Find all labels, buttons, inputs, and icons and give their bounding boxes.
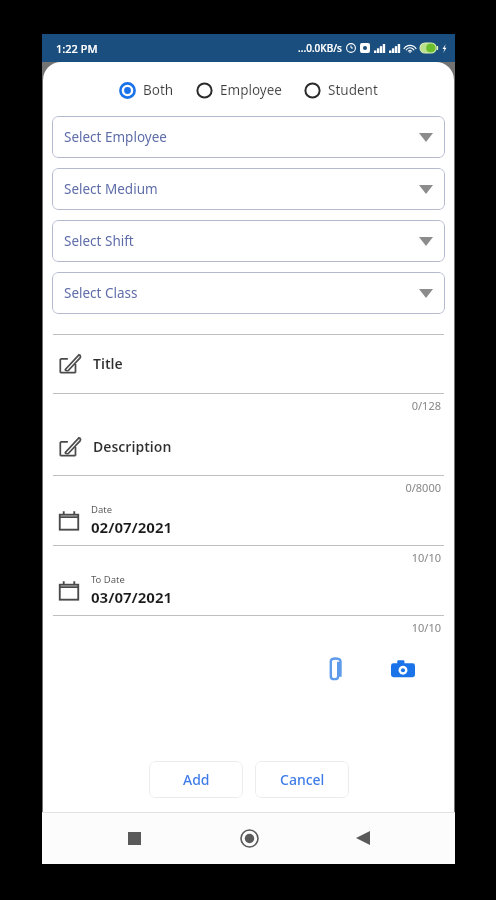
button[interactable]: Back (341, 816, 385, 860)
button[interactable]: Date (52, 495, 445, 565)
button[interactable]: Student (302, 78, 380, 102)
staticText: 02/07/2021 (91, 517, 173, 537)
staticText: 03/07/2021 (91, 587, 173, 607)
staticText: Employee (220, 81, 282, 99)
staticText: To Date (91, 573, 125, 586)
button[interactable]: To Date (52, 565, 445, 635)
button[interactable]: Both (117, 78, 176, 102)
staticText: Add (183, 770, 210, 789)
button[interactable]: Take photo (377, 643, 429, 695)
button[interactable]: Description (52, 413, 445, 495)
staticText: Student (328, 81, 378, 99)
button[interactable]: Recent apps (112, 816, 156, 860)
button[interactable]: Title (52, 335, 445, 413)
staticText: 0/8000 (52, 480, 441, 495)
staticText: Date (91, 503, 113, 516)
staticText: Select Shift (64, 232, 134, 250)
button[interactable]: Select Shift (52, 220, 445, 262)
staticText: 10/10 (52, 550, 441, 565)
button[interactable]: Employee (194, 78, 284, 102)
staticText: Description (93, 437, 172, 456)
staticText: Select Medium (64, 180, 158, 198)
staticText: ...0.0KB/s (298, 41, 342, 55)
staticText: 1:22 PM (56, 41, 98, 56)
staticText: Title (93, 354, 123, 373)
staticText: 0/128 (52, 398, 441, 413)
button[interactable]: Home (227, 816, 271, 860)
staticText: Cancel (280, 770, 325, 789)
button[interactable]: Select Medium (52, 168, 445, 210)
button[interactable]: Attach file (308, 643, 360, 695)
staticText: Select Employee (64, 128, 167, 146)
button[interactable]: Cancel (255, 761, 349, 798)
staticText: Select Class (64, 284, 138, 302)
button[interactable]: Select Class (52, 272, 445, 314)
staticText: 10/10 (52, 620, 441, 635)
button[interactable]: Select Employee (52, 116, 445, 158)
staticText: Both (143, 81, 174, 99)
button[interactable]: Add (149, 761, 243, 798)
